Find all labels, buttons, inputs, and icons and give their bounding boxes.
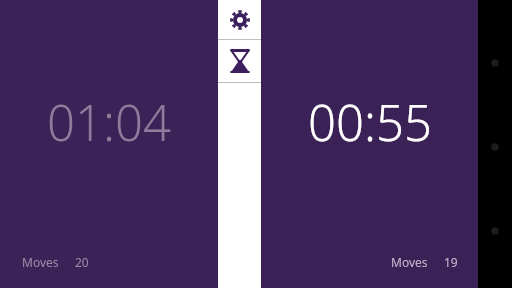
button[interactable]: Settings (218, 0, 261, 39)
staticText: Moves (391, 254, 428, 270)
button[interactable]: 00:55 (261, 0, 478, 288)
staticText: 19 (444, 254, 458, 270)
staticText: 00:55 (308, 89, 432, 156)
staticText: 20 (75, 254, 89, 270)
button[interactable]: Timer settings (218, 40, 261, 82)
staticText: Moves (22, 254, 59, 270)
staticText: 01:04 (47, 89, 171, 156)
button[interactable]: 01:04 (0, 0, 218, 288)
